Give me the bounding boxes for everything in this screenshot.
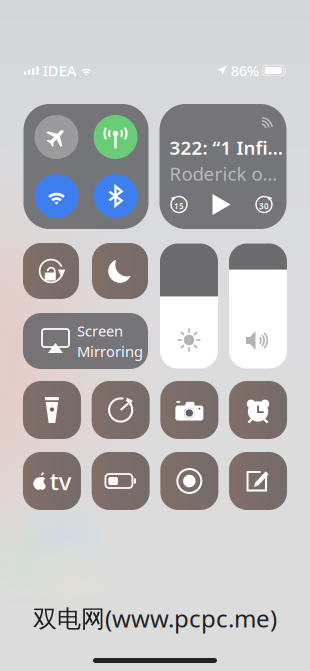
button[interactable]: Camera <box>160 381 218 439</box>
staticText: 15 <box>174 201 184 211</box>
staticText: 322: “1 Infinit… <box>169 135 286 160</box>
staticText: Mirroring <box>77 341 143 361</box>
button[interactable]: Timer <box>92 381 150 439</box>
button[interactable]: Flashlight <box>23 381 81 439</box>
button[interactable]: Airplane Mode <box>34 115 78 159</box>
staticText: 30 <box>259 201 269 211</box>
staticText: IDEA <box>43 61 77 80</box>
staticText: Roderick on t… <box>169 161 286 186</box>
button[interactable]: Brightness <box>160 243 218 368</box>
button[interactable]: Volume <box>229 243 287 368</box>
button[interactable]: Wi-Fi <box>34 174 78 218</box>
staticText: 86% <box>231 61 259 80</box>
button[interactable]: Play <box>209 193 233 216</box>
button[interactable]: Apple TV Remote <box>23 452 81 510</box>
staticText: Screen <box>77 321 123 340</box>
button[interactable]: Screen Recording <box>160 452 218 510</box>
button[interactable]: Skip back 15 seconds <box>169 195 188 214</box>
button[interactable]: Bluetooth <box>93 174 137 218</box>
button[interactable]: Rotation Lock <box>23 243 79 299</box>
button[interactable]: Do Not Disturb <box>92 243 148 299</box>
button[interactable]: Skip forward 30 seconds <box>254 195 273 214</box>
button[interactable]: Notes <box>229 452 287 510</box>
button[interactable]: Alarm <box>229 381 287 439</box>
button[interactable]: Low Power Mode <box>92 452 150 510</box>
button[interactable]: Cellular Data <box>93 115 137 159</box>
button[interactable]: AirPlay <box>259 104 286 130</box>
staticText: tv <box>50 465 72 497</box>
staticText: 双电网(www.pcpc.me) <box>33 602 277 634</box>
button[interactable]: Screen Mirroring <box>23 313 148 369</box>
